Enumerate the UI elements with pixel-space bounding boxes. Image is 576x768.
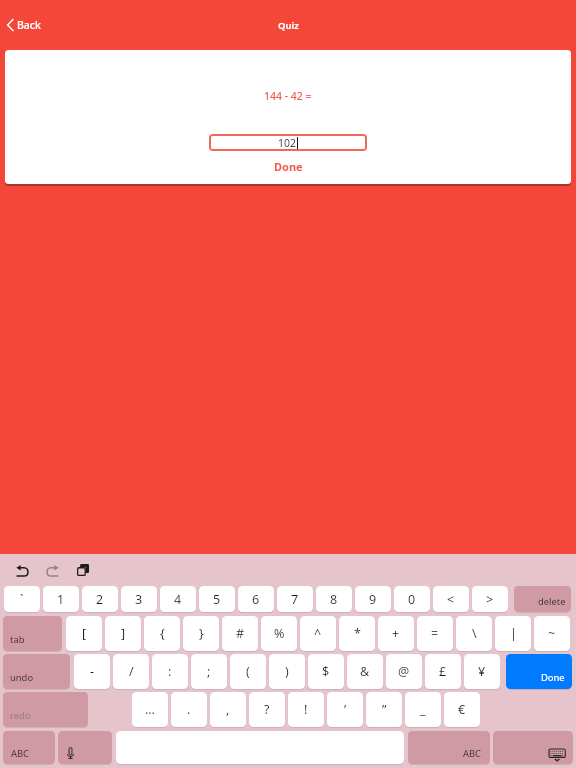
staticText: : bbox=[168, 663, 172, 680]
button[interactable]: { bbox=[144, 616, 180, 651]
staticText: # bbox=[236, 625, 245, 642]
staticText: 144 - 42 = bbox=[264, 89, 312, 103]
button[interactable]: ’ bbox=[327, 692, 363, 727]
button[interactable]: | bbox=[495, 616, 531, 651]
staticText: ’ bbox=[344, 701, 347, 718]
button[interactable]: Redo bbox=[44, 563, 60, 579]
button[interactable]: . bbox=[171, 692, 207, 727]
button[interactable]: tab bbox=[3, 616, 62, 651]
button[interactable]: 4 bbox=[160, 586, 196, 612]
staticText: @ bbox=[398, 663, 410, 680]
button[interactable]: redo bbox=[3, 692, 88, 727]
staticText: 6 bbox=[252, 591, 260, 608]
button[interactable]: Done bbox=[506, 654, 572, 689]
button[interactable]: \ bbox=[456, 616, 492, 651]
staticText: € bbox=[458, 701, 466, 718]
button[interactable]: : bbox=[152, 654, 188, 689]
staticText: [ bbox=[82, 625, 87, 642]
staticText: , bbox=[226, 701, 230, 718]
button[interactable]: @ bbox=[386, 654, 422, 689]
staticText: ABC bbox=[11, 747, 30, 760]
staticText: 7 bbox=[291, 591, 299, 608]
button[interactable]: & bbox=[347, 654, 383, 689]
button[interactable]: $ bbox=[308, 654, 344, 689]
button[interactable]: Dictation bbox=[58, 731, 112, 764]
button[interactable]: Undo bbox=[14, 563, 30, 579]
button[interactable]: ¥ bbox=[464, 654, 500, 689]
button[interactable]: ? bbox=[249, 692, 285, 727]
staticText: } bbox=[199, 625, 204, 642]
staticText: 1 bbox=[57, 591, 65, 608]
button[interactable]: * bbox=[339, 616, 375, 651]
button[interactable]: 1 bbox=[43, 586, 79, 612]
button[interactable]: - bbox=[74, 654, 110, 689]
staticText: … bbox=[145, 701, 155, 718]
staticText: 3 bbox=[135, 591, 143, 608]
staticText: ` bbox=[20, 591, 24, 608]
staticText: 9 bbox=[369, 591, 377, 608]
staticText: ( bbox=[246, 663, 250, 680]
button[interactable]: delete bbox=[514, 586, 571, 612]
button[interactable]: ; bbox=[191, 654, 227, 689]
button[interactable]: ” bbox=[366, 692, 402, 727]
button[interactable]: £ bbox=[425, 654, 461, 689]
button[interactable]: undo bbox=[3, 654, 70, 689]
staticText: ) bbox=[285, 663, 289, 680]
staticText: 0 bbox=[408, 591, 416, 608]
staticText: * bbox=[354, 625, 361, 642]
staticText: \ bbox=[472, 625, 477, 642]
button[interactable]: Hide keyboard bbox=[493, 731, 573, 764]
button[interactable]: 3 bbox=[121, 586, 157, 612]
button[interactable]: , bbox=[210, 692, 246, 727]
button[interactable]: ) bbox=[269, 654, 305, 689]
staticText: { bbox=[160, 625, 165, 642]
button[interactable]: 2 bbox=[82, 586, 118, 612]
button[interactable]: 6 bbox=[238, 586, 274, 612]
button[interactable]: ABC bbox=[408, 731, 490, 764]
button[interactable]: ~ bbox=[534, 616, 570, 651]
button[interactable]: 9 bbox=[355, 586, 391, 612]
button[interactable]: Back bbox=[3, 15, 45, 35]
staticText: 4 bbox=[174, 591, 182, 608]
button[interactable]: ` bbox=[4, 586, 40, 612]
button[interactable]: } bbox=[183, 616, 219, 651]
staticText: ] bbox=[121, 625, 126, 642]
button[interactable]: € bbox=[444, 692, 480, 727]
button[interactable]: Done bbox=[274, 159, 303, 174]
button[interactable]: % bbox=[261, 616, 297, 651]
button[interactable]: > bbox=[472, 586, 508, 612]
button[interactable]: 102 bbox=[209, 134, 367, 151]
staticText: ! bbox=[304, 701, 308, 718]
staticText: delete bbox=[538, 595, 566, 608]
staticText: 2 bbox=[96, 591, 104, 608]
button[interactable]: ABC bbox=[3, 731, 55, 764]
button[interactable]: ] bbox=[105, 616, 141, 651]
button[interactable]: 0 bbox=[394, 586, 430, 612]
staticText: & bbox=[360, 663, 370, 680]
button[interactable]: # bbox=[222, 616, 258, 651]
staticText: = bbox=[431, 625, 439, 642]
staticText: 102 bbox=[278, 136, 297, 150]
button[interactable]: = bbox=[417, 616, 453, 651]
button[interactable]: 5 bbox=[199, 586, 235, 612]
staticText: | bbox=[510, 625, 517, 642]
button[interactable]: _ bbox=[405, 692, 441, 727]
staticText: undo bbox=[10, 671, 34, 684]
button[interactable]: 7 bbox=[277, 586, 313, 612]
staticText: $ bbox=[322, 663, 330, 680]
button[interactable]: < bbox=[433, 586, 469, 612]
button[interactable]: ! bbox=[288, 692, 324, 727]
button[interactable]: [ bbox=[66, 616, 102, 651]
staticText: % bbox=[274, 625, 285, 642]
button[interactable]: ^ bbox=[300, 616, 336, 651]
button[interactable]: 8 bbox=[316, 586, 352, 612]
staticText: Done bbox=[274, 159, 303, 174]
button[interactable]: … bbox=[132, 692, 168, 727]
staticText: > bbox=[486, 591, 494, 608]
button[interactable]: Copy bbox=[75, 562, 91, 578]
staticText: / bbox=[129, 663, 134, 680]
button[interactable]: / bbox=[113, 654, 149, 689]
button[interactable]: ( bbox=[230, 654, 266, 689]
button[interactable]: + bbox=[378, 616, 414, 651]
